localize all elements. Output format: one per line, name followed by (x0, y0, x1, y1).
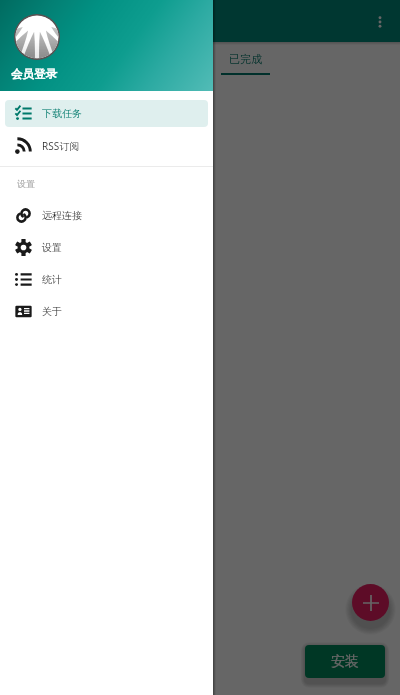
button[interactable]: RSS订阅 (5, 132, 208, 159)
staticText: 远程连接 (42, 209, 82, 222)
staticText: 统计 (42, 273, 62, 286)
staticText: 关于 (42, 305, 62, 318)
button[interactable]: 远程连接 (5, 202, 208, 229)
staticText: 安装 (331, 653, 359, 671)
staticText: 设置 (42, 241, 62, 254)
button[interactable]: More options (364, 6, 396, 38)
staticText: 设置 (17, 178, 35, 189)
button[interactable]: 统计 (5, 266, 208, 293)
staticText: 会员登录 (11, 67, 57, 81)
button[interactable]: 下载任务 (5, 100, 208, 127)
button[interactable]: 设置 (5, 234, 208, 261)
button[interactable]: 关于 (5, 298, 208, 325)
button[interactable]: 已完成 (221, 43, 270, 74)
button[interactable]: 会员登录 (0, 0, 213, 91)
staticText: 已完成 (229, 52, 262, 66)
staticText: 下载任务 (42, 107, 82, 120)
staticText: RSS订阅 (42, 139, 80, 153)
button[interactable]: Add (352, 584, 389, 621)
button[interactable]: 安装 (305, 645, 385, 678)
